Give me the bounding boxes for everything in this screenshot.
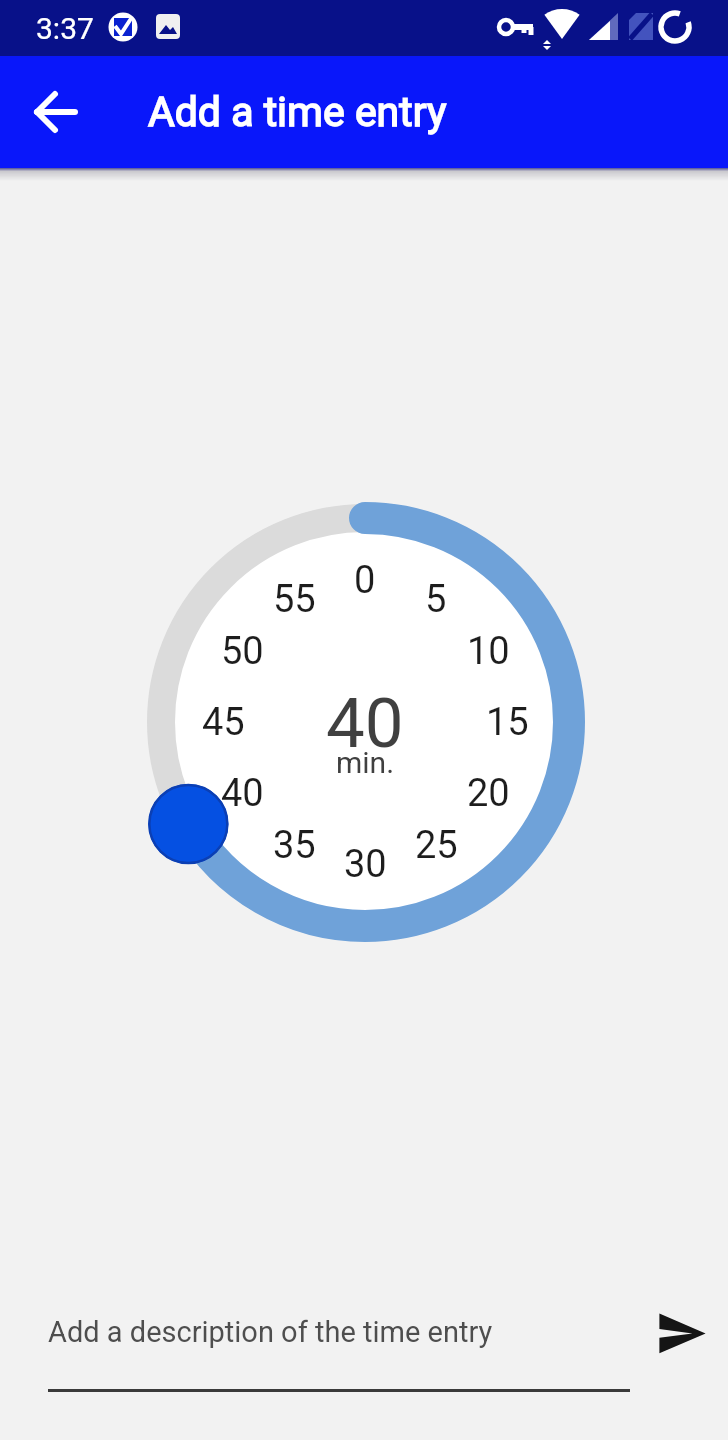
staticText: 20 <box>467 771 510 816</box>
button[interactable]: Add a description of the time entry <box>48 1296 630 1392</box>
staticText: Add a time entry <box>148 88 447 136</box>
staticText: 45 <box>202 700 245 745</box>
button[interactable] <box>643 1295 715 1367</box>
staticText: Add a description of the time entry <box>48 1315 493 1349</box>
staticText: 0 <box>354 558 376 603</box>
button[interactable] <box>20 75 94 149</box>
staticText: 40 <box>221 771 264 816</box>
staticText: 50 <box>221 629 264 674</box>
staticText: 30 <box>344 842 387 887</box>
staticText: 5 <box>425 577 447 622</box>
staticText: 3:37 <box>36 11 94 46</box>
staticText: min. <box>336 745 395 780</box>
staticText: 10 <box>467 629 510 674</box>
staticText: 55 <box>273 577 316 622</box>
staticText: 25 <box>415 823 458 868</box>
staticText: 35 <box>273 823 316 868</box>
staticText: 15 <box>486 700 529 745</box>
staticText: 40 <box>326 683 404 759</box>
